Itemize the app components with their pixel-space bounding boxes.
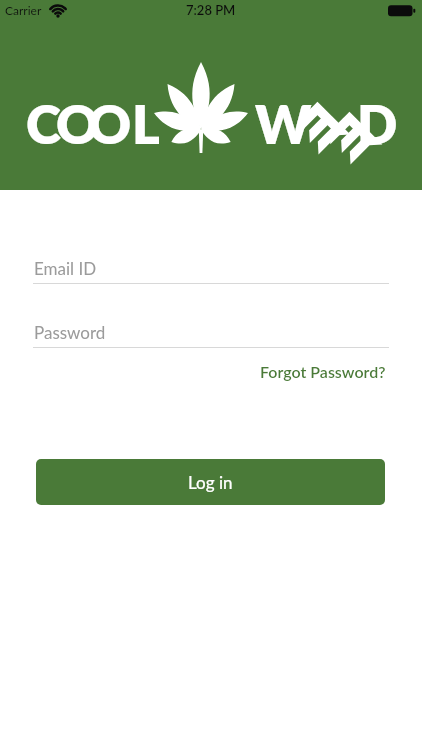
button[interactable]: Password xyxy=(33,314,389,348)
staticText: Carrier xyxy=(5,3,42,17)
staticText: W xyxy=(255,92,312,156)
staticText: 7:28 PM xyxy=(186,2,236,18)
staticText: C xyxy=(26,92,61,156)
staticText: Email ID xyxy=(34,258,97,278)
staticText: L xyxy=(132,92,160,156)
staticText: D xyxy=(357,92,398,156)
staticText: O xyxy=(88,92,132,156)
button[interactable]: Log in xyxy=(36,459,385,505)
button[interactable]: Email ID xyxy=(33,250,389,284)
staticText: Password xyxy=(34,322,106,342)
staticText: Forgot Password? xyxy=(260,362,386,381)
staticText: O xyxy=(56,92,100,156)
button[interactable]: Forgot Password? xyxy=(260,362,386,381)
staticText: Log in xyxy=(188,472,233,492)
